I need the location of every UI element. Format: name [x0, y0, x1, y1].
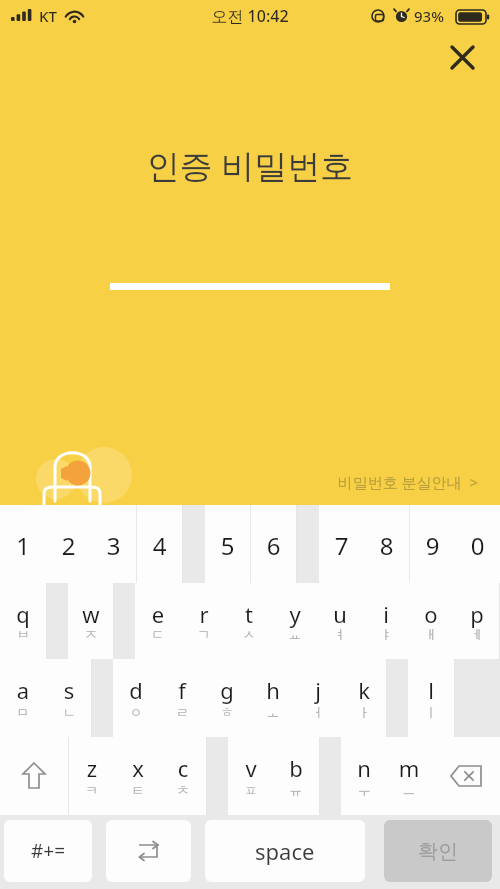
staticText: h — [250, 675, 296, 705]
button[interactable]: 8 — [364, 505, 409, 583]
staticText: 9 — [410, 529, 455, 562]
staticText: e — [135, 599, 181, 629]
button[interactable]: g — [204, 659, 250, 737]
button[interactable]: n — [341, 737, 387, 815]
button[interactable]: r — [181, 583, 227, 659]
staticText: ㄷ — [135, 626, 181, 642]
staticText: l — [408, 675, 454, 705]
staticText: 오전 10:42 — [0, 5, 500, 27]
button[interactable]: 6 — [251, 505, 296, 583]
button[interactable]: c — [160, 737, 206, 815]
staticText: ㅔ — [454, 626, 500, 642]
staticText: p — [454, 599, 500, 629]
button[interactable]: p — [454, 583, 500, 659]
staticText: w — [68, 599, 114, 629]
staticText: ㅏ — [341, 704, 387, 720]
staticText: ㄴ — [46, 704, 92, 720]
button[interactable]: #+= — [4, 820, 92, 882]
button[interactable]: 확인 — [384, 820, 492, 882]
staticText: 2 — [46, 529, 91, 562]
staticText: m — [386, 753, 432, 783]
button[interactable]: k — [341, 659, 387, 737]
button[interactable]: j — [295, 659, 341, 737]
staticText: ㅡ — [386, 782, 432, 798]
button[interactable]: e — [135, 583, 181, 659]
button[interactable]: m — [386, 737, 432, 815]
button[interactable]: 3 — [91, 505, 136, 583]
staticText: ㅠ — [273, 782, 319, 798]
staticText: 0 — [455, 529, 500, 562]
button[interactable]: w — [68, 583, 114, 659]
button[interactable]: 비밀번호 분실안내 > — [300, 468, 478, 496]
button[interactable]: 4 — [137, 505, 182, 583]
staticText: ㅎ — [204, 704, 250, 720]
button[interactable]: f — [159, 659, 205, 737]
staticText: 비밀번호 분실안내 > — [300, 472, 478, 492]
staticText: ㅊ — [160, 782, 206, 798]
staticText: ㅣ — [408, 704, 454, 720]
staticText: t — [226, 599, 272, 629]
button[interactable]: t — [226, 583, 272, 659]
button[interactable]: s — [46, 659, 92, 737]
staticText: ㅑ — [363, 626, 409, 642]
staticText: ㄹ — [159, 704, 205, 720]
staticText: d — [113, 675, 159, 705]
staticText: 인증 비밀번호 — [0, 143, 500, 188]
staticText: ㅌ — [115, 782, 161, 798]
staticText: ㅇ — [113, 704, 159, 720]
button[interactable]: b — [273, 737, 319, 815]
staticText: s — [46, 675, 92, 705]
staticText: 4 — [137, 529, 182, 562]
staticText: k — [341, 675, 387, 705]
button[interactable]: Backspace — [432, 737, 500, 815]
button[interactable]: v — [228, 737, 274, 815]
button[interactable]: y — [272, 583, 318, 659]
button[interactable]: 2 — [46, 505, 91, 583]
button[interactable]: x — [115, 737, 161, 815]
staticText: z — [69, 753, 115, 783]
button[interactable]: Shift — [0, 737, 68, 815]
button[interactable]: a — [0, 659, 46, 737]
staticText: y — [272, 599, 318, 629]
button[interactable]: z — [69, 737, 115, 815]
staticText: v — [228, 753, 274, 783]
staticText: ㅐ — [408, 626, 454, 642]
button[interactable]: 7 — [319, 505, 364, 583]
button[interactable]: q — [0, 583, 46, 659]
staticText: o — [408, 599, 454, 629]
staticText: 7 — [319, 529, 364, 562]
staticText: ㅜ — [341, 782, 387, 798]
button[interactable]: h — [250, 659, 296, 737]
button[interactable]: Change language — [106, 820, 191, 882]
button[interactable]: o — [408, 583, 454, 659]
staticText: ㅅ — [226, 626, 272, 642]
staticText: ㄱ — [181, 626, 227, 642]
staticText: ㅂ — [0, 626, 46, 642]
staticText: 3 — [91, 529, 136, 562]
staticText: r — [181, 599, 227, 629]
staticText: 93% — [414, 6, 444, 26]
staticText: j — [295, 675, 341, 705]
staticText: i — [363, 599, 409, 629]
staticText: #+= — [31, 838, 66, 864]
button[interactable]: 1 — [0, 505, 46, 583]
staticText: 6 — [251, 529, 296, 562]
staticText: 8 — [364, 529, 409, 562]
button[interactable]: 5 — [205, 505, 250, 583]
button[interactable]: d — [113, 659, 159, 737]
button[interactable]: u — [317, 583, 363, 659]
button[interactable]: 9 — [410, 505, 455, 583]
staticText: KT — [39, 6, 57, 26]
staticText: ㅁ — [0, 704, 46, 720]
staticText: x — [115, 753, 161, 783]
staticText: b — [273, 753, 319, 783]
staticText: 1 — [0, 529, 46, 562]
staticText: q — [0, 599, 46, 629]
button[interactable]: l — [408, 659, 454, 737]
button[interactable]: space — [205, 820, 365, 882]
button[interactable]: Close — [439, 34, 485, 80]
staticText: n — [341, 753, 387, 783]
button[interactable]: 0 — [455, 505, 500, 583]
staticText: ㅈ — [68, 626, 114, 642]
button[interactable]: i — [363, 583, 409, 659]
